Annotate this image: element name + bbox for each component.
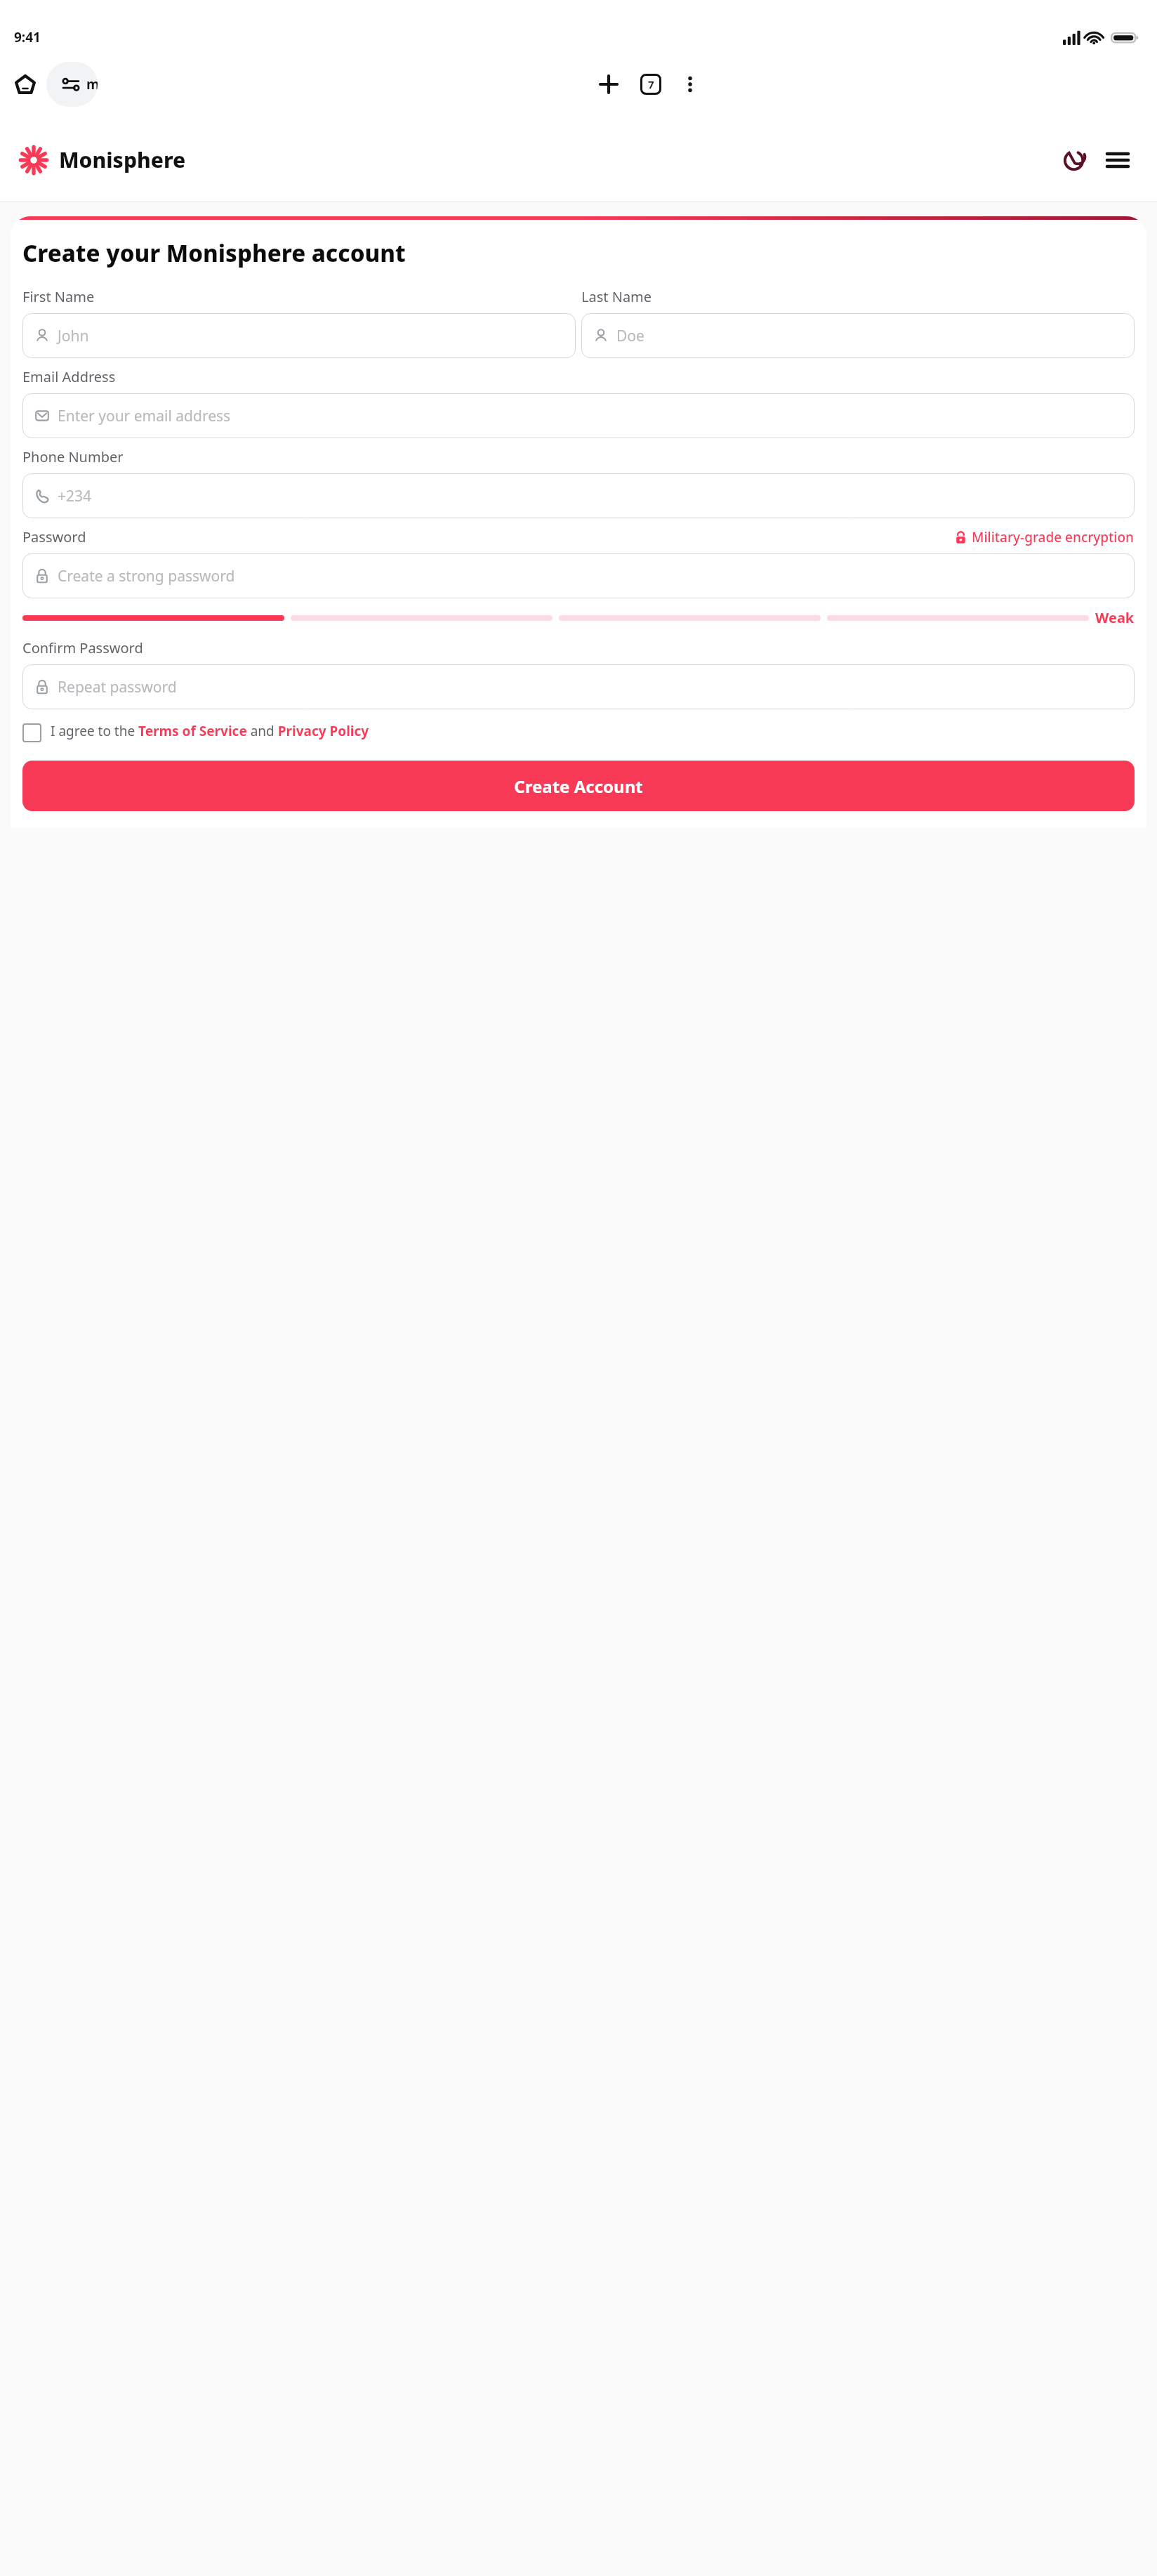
button[interactable]: Doe (581, 313, 1135, 358)
staticText: Email Address (22, 367, 116, 386)
button[interactable]: Toggle dark mode (1056, 142, 1092, 178)
staticText: First Name (22, 287, 95, 306)
staticText: Create a strong password (58, 566, 235, 586)
button[interactable]: Home (8, 67, 42, 101)
button[interactable]: I agree to the Terms of Service and Priv… (22, 722, 1135, 742)
staticText: Repeat password (58, 677, 177, 697)
staticText: John (58, 326, 89, 346)
button[interactable]: Tabs, 7 open (633, 66, 669, 103)
staticText: Create your Monisphere account (22, 237, 957, 269)
button[interactable]: Menu (1099, 142, 1136, 178)
staticText: Confirm Password (22, 638, 143, 657)
button[interactable]: New tab (590, 66, 627, 103)
staticText: Monisphere (59, 145, 186, 174)
button[interactable]: Repeat password (22, 664, 1135, 709)
button[interactable]: John (22, 313, 576, 358)
staticText: 7 (648, 77, 654, 91)
button[interactable]: Create Account (22, 761, 1135, 811)
button[interactable]: More options (673, 67, 707, 101)
staticText: Weak (1095, 608, 1135, 627)
staticText: Doe (616, 326, 644, 346)
staticText: I agree to the Terms of Service and Priv… (51, 722, 369, 740)
staticText: Last Name (581, 287, 652, 306)
staticText: Create Account (514, 775, 643, 798)
button[interactable]: Enter your email address (22, 393, 1135, 438)
staticText: +234 (58, 486, 92, 506)
button[interactable]: +234 (22, 473, 1135, 518)
staticText: Enter your email address (58, 406, 231, 426)
staticText: Phone Number (22, 447, 124, 466)
button[interactable]: monisphere.com (46, 62, 98, 107)
staticText: Password (22, 527, 86, 546)
staticText: 9:41 (14, 28, 41, 46)
button[interactable]: Monisphere (20, 145, 186, 174)
staticText: Military-grade encryption (972, 528, 1135, 546)
button[interactable]: Create a strong password (22, 553, 1135, 598)
